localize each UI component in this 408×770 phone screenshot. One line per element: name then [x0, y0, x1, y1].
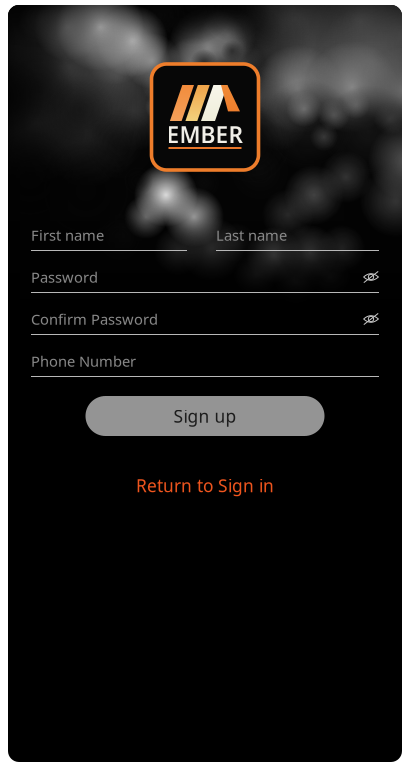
button[interactable]: Sign up	[85, 396, 324, 436]
staticText: First name	[31, 225, 104, 245]
staticText: Phone Number	[31, 351, 136, 371]
staticText: Confirm Password	[31, 309, 158, 329]
staticText: Return to Sign in	[136, 474, 274, 497]
staticText: Password	[31, 267, 98, 287]
button[interactable]: Return to Sign in	[126, 468, 284, 503]
staticText: Sign up	[173, 404, 236, 427]
staticText: Last name	[216, 225, 287, 245]
staticText: EMBER	[166, 119, 243, 149]
